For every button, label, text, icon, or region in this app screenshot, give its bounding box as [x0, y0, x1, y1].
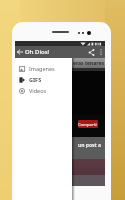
staticText: eras tenares	[73, 60, 104, 67]
button[interactable]: Compartir	[78, 120, 98, 128]
button[interactable]: Share	[85, 46, 97, 58]
button[interactable]: Imagenes	[15, 63, 72, 74]
staticText: Oh Dios!	[25, 48, 50, 56]
staticText: Imagenes	[29, 65, 55, 72]
staticText: un post a	[78, 142, 102, 149]
staticText: Videos	[29, 87, 47, 94]
button[interactable]: More options	[97, 46, 105, 58]
staticText: GIFS	[29, 76, 42, 83]
button[interactable]: GIFS	[15, 74, 72, 85]
staticText: Compartir	[78, 122, 98, 127]
button[interactable]: Back	[15, 46, 25, 58]
button[interactable]: Videos	[15, 85, 72, 96]
